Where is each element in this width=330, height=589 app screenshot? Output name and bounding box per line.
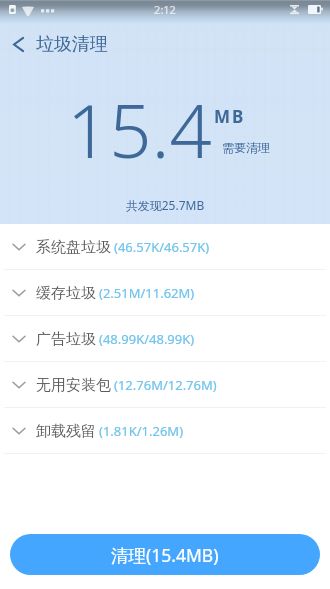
staticText: 无用安装包 bbox=[36, 376, 111, 395]
staticText: (12.76M/12.76M) bbox=[114, 376, 217, 394]
staticText: (1.81K/1.26M) bbox=[99, 422, 184, 440]
button[interactable]: 缓存垃圾 bbox=[0, 270, 330, 316]
staticText: 需要清理 bbox=[222, 140, 270, 155]
staticText: 2:12 bbox=[0, 2, 330, 17]
staticText: 广告垃圾 bbox=[36, 330, 96, 349]
staticText: 清理(15.4MB) bbox=[111, 543, 219, 567]
button[interactable]: Back bbox=[0, 29, 36, 59]
button[interactable]: 系统盘垃圾 bbox=[0, 224, 330, 270]
staticText: (2.51M/11.62M) bbox=[99, 284, 195, 302]
staticText: (48.99K/48.99K) bbox=[99, 330, 195, 348]
staticText: 15.4 bbox=[67, 79, 212, 180]
button[interactable]: 广告垃圾 bbox=[0, 316, 330, 362]
staticText: MB bbox=[214, 105, 246, 128]
button[interactable]: 清理(15.4MB) bbox=[10, 534, 320, 575]
staticText: 缓存垃圾 bbox=[36, 284, 96, 303]
staticText: 垃圾清理 bbox=[36, 33, 108, 56]
staticText: 系统盘垃圾 bbox=[36, 238, 111, 257]
staticText: 共发现25.7MB bbox=[0, 197, 330, 213]
button[interactable]: 无用安装包 bbox=[0, 362, 330, 408]
staticText: 卸载残留 bbox=[36, 422, 96, 441]
button[interactable]: 卸载残留 bbox=[0, 408, 330, 454]
staticText: (46.57K/46.57K) bbox=[114, 238, 210, 256]
